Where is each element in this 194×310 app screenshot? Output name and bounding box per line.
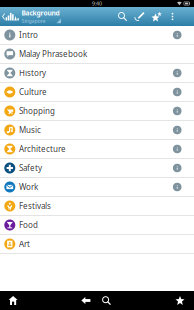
button[interactable]: Intro [0, 26, 194, 45]
staticText: Food [19, 220, 38, 230]
button[interactable]: Culture [0, 83, 194, 102]
button[interactable]: Art [0, 235, 194, 254]
button[interactable]: Favourites [169, 291, 191, 310]
staticText: Festivals [19, 201, 51, 211]
button[interactable]: Back [0, 7, 18, 26]
staticText: Intro [19, 30, 38, 40]
staticText: Work [19, 182, 38, 192]
button[interactable]: Search [114, 7, 131, 26]
button[interactable]: More options [165, 7, 180, 26]
button[interactable]: Back [76, 291, 96, 310]
staticText: Culture [19, 87, 47, 97]
staticText: Shopping [19, 106, 55, 116]
button[interactable]: Search [96, 291, 117, 310]
staticText: Architecture [19, 144, 66, 154]
staticText: History [19, 68, 46, 78]
staticText: Malay Phrasebook [19, 49, 87, 59]
button[interactable]: History [0, 64, 194, 83]
button[interactable]: Malay Phrasebook [0, 45, 194, 64]
button[interactable]: Favourites [148, 7, 165, 26]
button[interactable]: Work [0, 178, 194, 197]
button[interactable]: Background [18, 7, 61, 26]
staticText: 9:40 [92, 0, 102, 7]
staticText: Safety [19, 163, 42, 173]
staticText: Art [19, 239, 30, 249]
button[interactable]: Edit [131, 7, 148, 26]
button[interactable]: Festivals [0, 197, 194, 216]
staticText: Background [21, 8, 59, 17]
staticText: Music [19, 125, 41, 135]
button[interactable]: Music [0, 121, 194, 140]
button[interactable]: Safety [0, 159, 194, 178]
staticText: Singapore [21, 17, 45, 24]
button[interactable]: Architecture [0, 140, 194, 159]
button[interactable]: Home [2, 291, 24, 310]
button[interactable]: Shopping [0, 102, 194, 121]
button[interactable]: Food [0, 216, 194, 235]
